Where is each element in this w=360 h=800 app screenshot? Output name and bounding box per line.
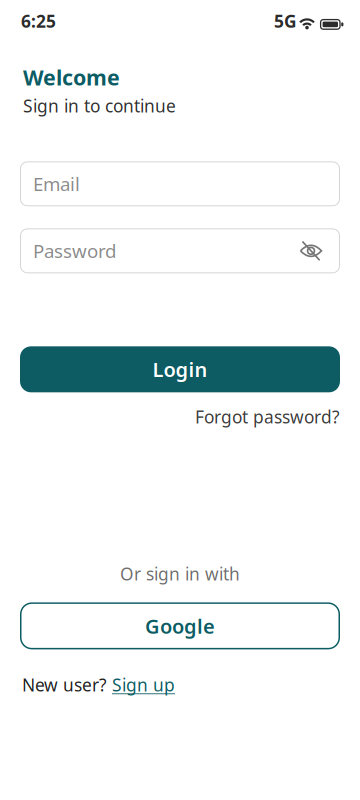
button[interactable]: Google (20, 602, 340, 649)
staticText: Google (145, 613, 215, 639)
staticText: Forgot password? (195, 405, 340, 428)
button[interactable]: Sign up (112, 673, 175, 696)
staticText: Or sign in with (120, 562, 240, 585)
button[interactable]: Email (20, 161, 340, 206)
staticText: Welcome (23, 63, 120, 91)
button[interactable]: Show password (299, 239, 323, 263)
button[interactable]: Forgot password? (195, 405, 340, 428)
staticText: Email (33, 171, 80, 196)
staticText: Password (33, 238, 116, 263)
button[interactable]: Password (20, 228, 340, 273)
staticText: Sign up (112, 673, 175, 696)
button[interactable]: Login (20, 346, 340, 392)
staticText: 6:25 (21, 9, 56, 32)
staticText: 5G (274, 9, 297, 32)
staticText: Login (152, 356, 207, 383)
staticText: Sign in to continue (23, 94, 176, 117)
staticText: New user? (22, 673, 112, 696)
